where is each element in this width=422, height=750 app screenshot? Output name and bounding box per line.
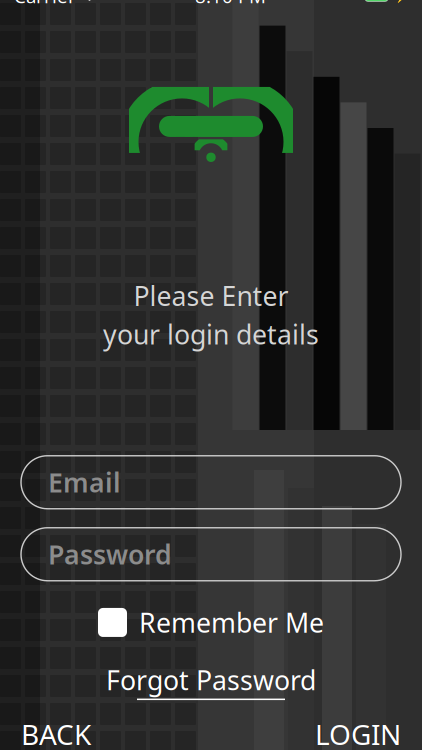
- button[interactable]: LOGIN: [309, 707, 407, 750]
- staticText: Forgot Password: [106, 662, 316, 698]
- button[interactable]: Remember Me: [98, 601, 324, 644]
- staticText: Please Enter: [133, 278, 288, 313]
- staticText: Password: [48, 536, 172, 572]
- staticText: ⚡: [394, 0, 411, 3]
- staticText: your login details: [103, 316, 319, 352]
- button[interactable]: Forgot Password: [98, 658, 324, 704]
- staticText: 8:10 PM: [195, 0, 266, 8]
- staticText: LOGIN: [315, 715, 401, 750]
- staticText: BACK: [21, 715, 91, 750]
- button[interactable]: BACK: [15, 707, 97, 750]
- button[interactable]: Email: [21, 456, 401, 509]
- staticText: Remember Me: [139, 605, 324, 640]
- staticText: Email: [48, 464, 121, 500]
- staticText: Carrier: [14, 0, 76, 8]
- button[interactable]: Password: [21, 528, 401, 581]
